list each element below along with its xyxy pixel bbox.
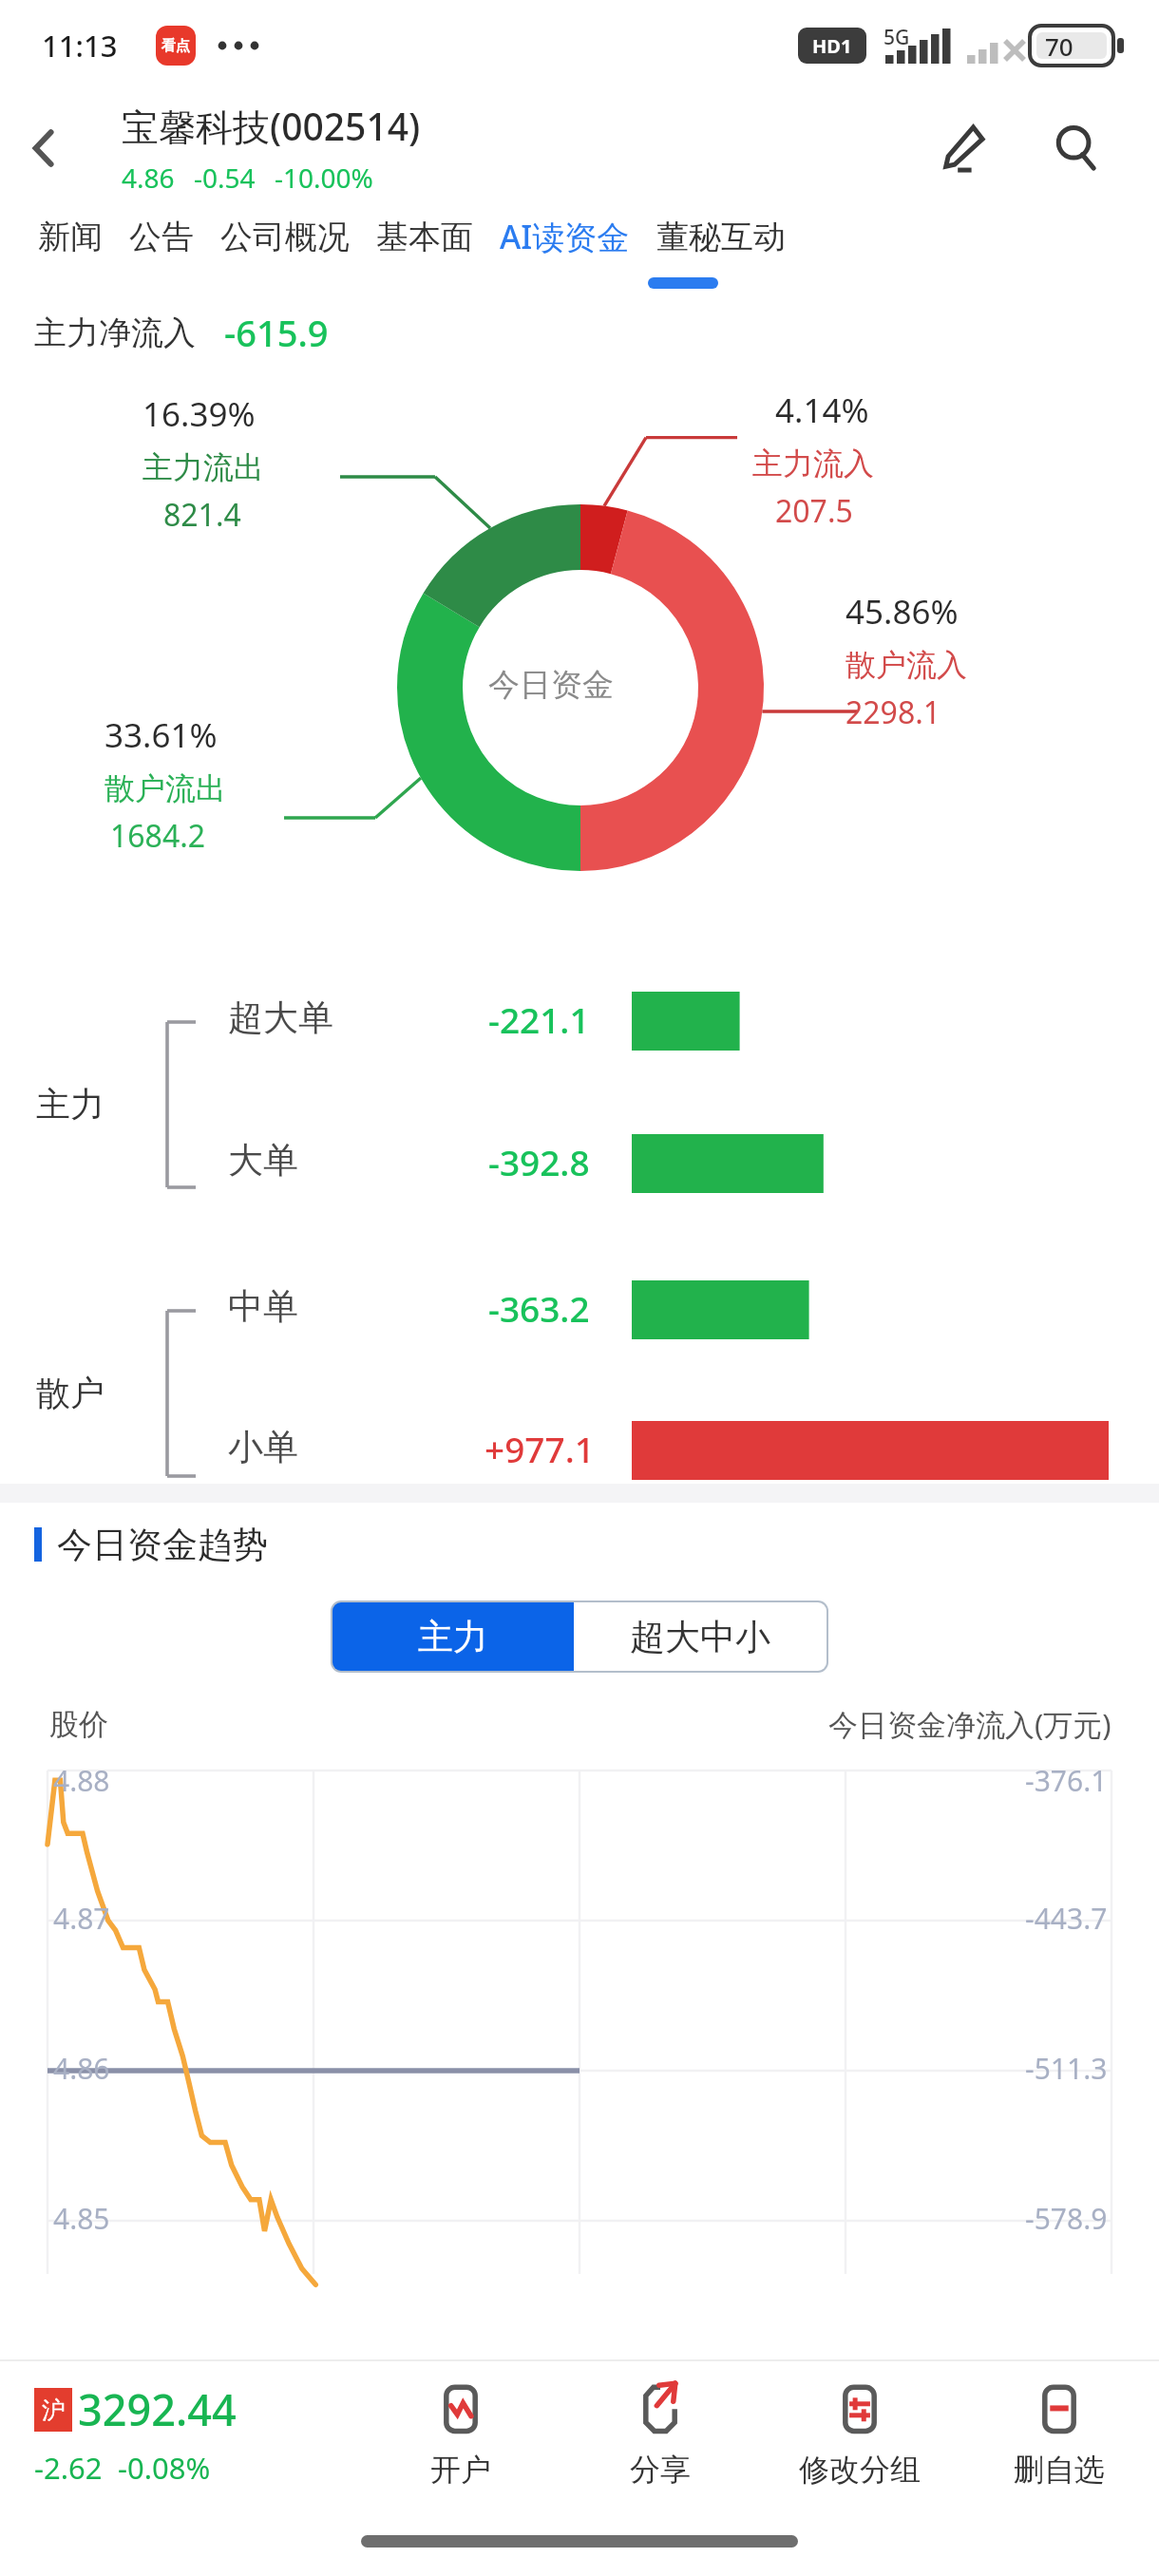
staticText: 821.4: [163, 494, 241, 536]
staticText: 4.86: [53, 2049, 110, 2088]
staticText: 16.39%: [142, 391, 256, 437]
staticText: 中单: [228, 1284, 298, 1329]
button[interactable]: 沪: [34, 2380, 361, 2488]
staticText: 修改分组: [799, 2451, 921, 2489]
button[interactable]: 新闻: [25, 207, 116, 267]
staticText: 主力: [36, 1083, 104, 1126]
staticText: -221.1: [488, 995, 590, 1043]
staticText: AI读资金: [500, 215, 630, 258]
staticText: -615.9: [224, 308, 329, 357]
staticText: -10.00%: [275, 160, 373, 196]
staticText: 宝馨科技(002514): [122, 101, 421, 151]
staticText: 分享: [630, 2451, 691, 2489]
staticText: -511.3: [1025, 2049, 1108, 2088]
button[interactable]: 超大中小: [574, 1602, 826, 1671]
staticText: 新闻: [38, 217, 103, 257]
staticText: -2.62: [34, 2448, 103, 2488]
staticText: 主力流出: [142, 448, 264, 486]
button[interactable]: 公司概况: [207, 207, 363, 267]
staticText: 散户: [36, 1372, 104, 1414]
staticText: 沪: [42, 2396, 66, 2425]
staticText: 散户流出: [104, 769, 226, 807]
staticText: 删自选: [1014, 2451, 1105, 2489]
staticText: 5G: [883, 24, 910, 51]
staticText: -0.08%: [118, 2448, 211, 2488]
staticText: 开户: [430, 2451, 491, 2489]
staticText: -578.9: [1025, 2199, 1108, 2238]
staticText: 大单: [228, 1138, 298, 1183]
button[interactable]: 修改分组: [760, 2361, 959, 2506]
staticText: -363.2: [488, 1284, 590, 1332]
staticText: 主力净流入: [34, 313, 196, 353]
staticText: 1684.2: [110, 815, 206, 857]
staticText: 4.88: [53, 1761, 110, 1800]
staticText: 公告: [129, 217, 194, 257]
staticText: 超大单: [228, 995, 333, 1040]
staticText: 主力: [418, 1615, 488, 1659]
staticText: 4.14%: [775, 388, 869, 433]
button[interactable]: 主力: [332, 1602, 574, 1671]
button[interactable]: Search: [1034, 105, 1119, 191]
staticText: 看点: [161, 37, 190, 55]
staticText: 主力流入: [752, 445, 874, 483]
staticText: 超大中小: [630, 1615, 770, 1659]
staticText: 股价: [49, 1706, 108, 1743]
staticText: 董秘互动: [656, 217, 786, 257]
button[interactable]: 分享: [560, 2361, 760, 2506]
button[interactable]: AI读资金: [486, 205, 643, 268]
button[interactable]: 董秘互动: [643, 207, 799, 267]
staticText: 4.85: [53, 2199, 110, 2238]
staticText: HD1: [812, 33, 852, 59]
staticText: 4.87: [53, 1899, 110, 1938]
staticText: -392.8: [488, 1138, 590, 1185]
button[interactable]: 公告: [116, 207, 207, 267]
button[interactable]: 删自选: [959, 2361, 1159, 2506]
button[interactable]: 基本面: [363, 207, 486, 267]
staticText: 公司概况: [220, 217, 350, 257]
staticText: 小单: [228, 1425, 298, 1469]
staticText: 45.86%: [845, 589, 959, 635]
staticText: 70: [1045, 29, 1073, 63]
staticText: 11:13: [42, 26, 118, 66]
staticText: -0.54: [194, 160, 256, 196]
button[interactable]: Edit: [920, 105, 1005, 191]
button[interactable]: Back: [0, 104, 87, 192]
staticText: -376.1: [1025, 1761, 1108, 1800]
staticText: 4.86: [122, 160, 175, 196]
staticText: 3292.44: [78, 2380, 237, 2438]
staticText: 今日资金净流入(万元): [828, 1704, 1111, 1744]
staticText: 33.61%: [104, 712, 218, 758]
staticText: 今日资金趋势: [57, 1523, 268, 1567]
staticText: -443.7: [1025, 1899, 1108, 1938]
staticText: 今日资金: [488, 665, 614, 705]
staticText: +977.1: [484, 1425, 595, 1472]
staticText: 散户流入: [845, 646, 967, 684]
staticText: 207.5: [775, 490, 853, 532]
staticText: 2298.1: [845, 691, 941, 733]
staticText: 基本面: [376, 217, 473, 257]
button[interactable]: 开户: [361, 2361, 560, 2506]
